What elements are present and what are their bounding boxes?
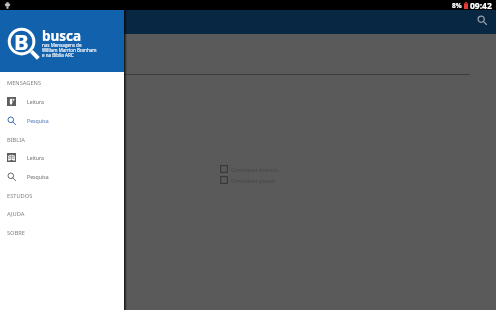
button[interactable]: Search [474,12,491,29]
staticText: B [14,26,29,56]
staticText: Considerar Acentos [231,166,279,173]
staticText: MENSAGENS [7,79,42,87]
button[interactable]: AJUDA [0,204,124,223]
button[interactable]: Pesquisa [0,167,124,186]
staticText: nas Mensagens de William Marrion Branham… [42,42,97,58]
button[interactable]: ESTUDOS [0,186,124,205]
button[interactable]: SOBRE [0,223,124,242]
staticText: Leitura [27,98,45,105]
staticText: 8% [452,1,462,10]
staticText: Leitura [27,154,45,161]
staticText: busca [42,27,82,45]
button[interactable]: MENSAGENS [0,73,124,92]
staticText: 09:42 [470,0,492,10]
staticText: AJUDA [7,210,25,218]
staticText: ESTUDOS [7,192,33,200]
staticText: SOBRE [7,229,25,237]
staticText: BÍBLIA [7,136,25,144]
staticText: Considerar plurais [231,177,276,184]
button[interactable]: Leitura [0,92,124,111]
button[interactable]: Considerar Acentos [220,165,279,173]
button[interactable]: Pesquisa [0,111,124,130]
button[interactable]: B [0,10,124,72]
button[interactable]: Considerar plurais [220,176,276,184]
staticText: Pesquisa [27,173,49,180]
button[interactable]: Leitura [0,148,124,167]
button[interactable]: BÍBLIA [0,130,124,149]
staticText: Pesquisa [27,117,49,124]
